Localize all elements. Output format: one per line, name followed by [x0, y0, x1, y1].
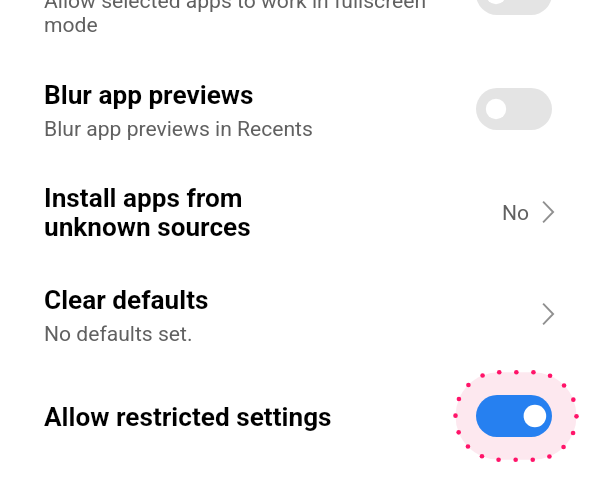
staticText: No	[502, 200, 530, 225]
staticText: No defaults set.	[44, 321, 193, 346]
staticText: Install apps from	[44, 183, 243, 214]
button[interactable]: Blur app previews	[476, 88, 552, 130]
button[interactable]: Clear defaults	[540, 298, 572, 330]
staticText: Allow selected apps to work in fullscree…	[44, 0, 427, 13]
button[interactable]: Clear defaults	[0, 262, 600, 364]
button[interactable]: Install apps from unknown sources	[540, 196, 572, 228]
staticText: mode	[44, 12, 98, 37]
staticText: Blur app previews	[44, 80, 254, 111]
staticText: unknown sources	[44, 212, 251, 243]
button[interactable]: Allow fullscreen apps	[476, 0, 552, 15]
staticText: Clear defaults	[44, 285, 209, 316]
button[interactable]: Allow restricted settings	[0, 364, 600, 466]
staticText: Allow restricted settings	[44, 402, 332, 433]
staticText: Blur app previews in Recents	[44, 116, 313, 141]
button[interactable]: Allow restricted settings	[476, 395, 552, 437]
button[interactable]: Allow selected apps to work in fullscree…	[0, 0, 600, 58]
button[interactable]: Blur app previews	[0, 58, 600, 160]
button[interactable]: Install apps from	[0, 160, 600, 262]
